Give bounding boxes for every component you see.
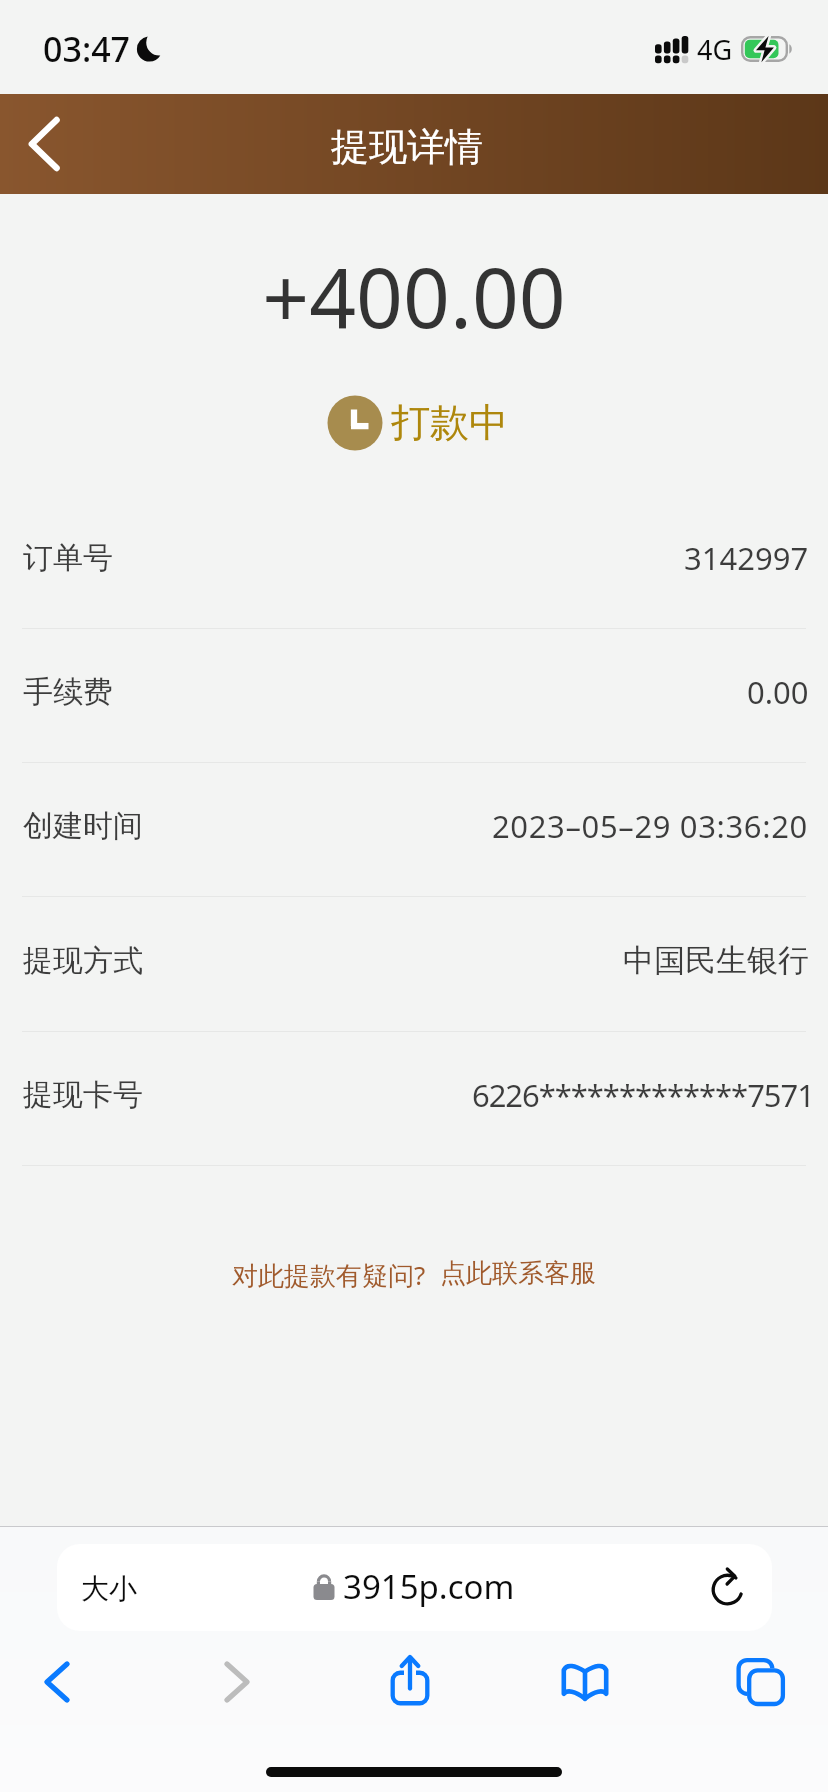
button[interactable]: Back [0,94,90,194]
button[interactable]: 点此联系客服 [440,1257,596,1290]
button[interactable]: 提现方式 [0,896,828,1031]
button[interactable]: 提现卡号 [0,1031,828,1165]
staticText: 点此联系客服 [440,1257,596,1290]
button[interactable]: Tabs [721,1642,801,1722]
staticText: 3915p.com [343,1564,515,1609]
staticText: 2023–05–29 03:36:20 [492,805,808,847]
button[interactable]: 大小 [57,1544,772,1631]
button[interactable]: Share [370,1642,450,1722]
staticText: +400.00 [0,240,828,352]
button[interactable]: Bookmarks [545,1642,625,1722]
staticText: 创建时间 [23,807,143,845]
staticText: 提现详情 [331,123,483,171]
staticText: 提现卡号 [23,1076,143,1114]
button[interactable]: 手续费 [0,628,828,762]
button[interactable]: Reload [699,1562,755,1618]
staticText: 手续费 [23,673,113,711]
staticText: 打款中 [391,398,508,447]
staticText: 中国民生银行 [623,941,809,980]
staticText: 03:47 [43,26,131,72]
staticText: 对此提款有疑问? [232,1257,426,1293]
button[interactable]: 创建时间 [0,762,828,896]
staticText: 6226*************7571 [472,1074,814,1116]
button[interactable]: Forward [197,1642,277,1722]
staticText: 3142997 [684,537,809,579]
staticText: 0.00 [747,671,809,713]
staticText: 提现方式 [23,942,143,980]
button[interactable]: 订单号 [0,494,828,628]
button[interactable]: Back [17,1642,97,1722]
staticText: 大小 [81,1571,137,1606]
staticText: 4G [697,31,733,68]
staticText: 订单号 [23,539,113,577]
